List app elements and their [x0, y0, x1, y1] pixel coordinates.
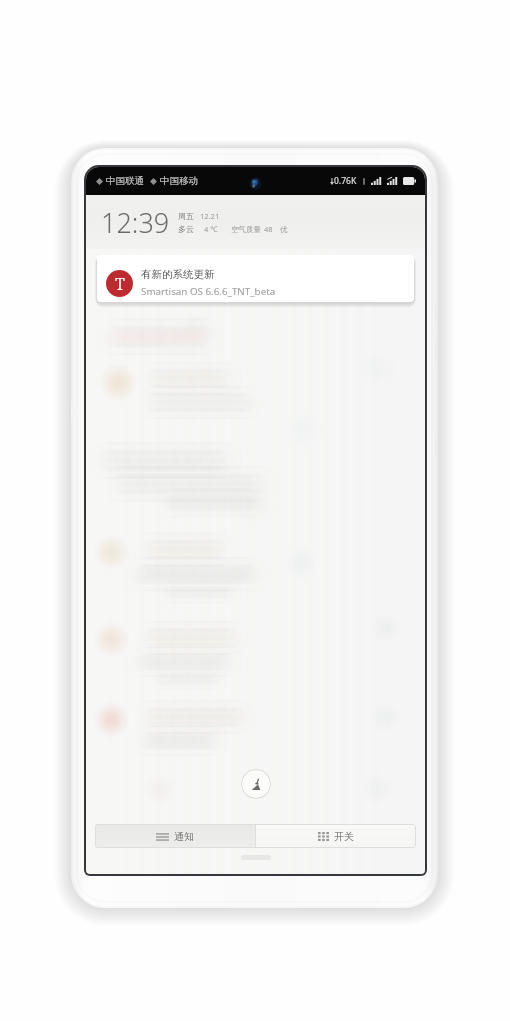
staticText: 12:39	[101, 204, 170, 241]
staticText: 多云	[178, 224, 194, 234]
staticText: T	[115, 273, 125, 295]
staticText: 中国移动	[160, 175, 198, 187]
button[interactable]: T	[97, 255, 414, 302]
staticText: Smartisan OS 6.6.6_TNT_beta	[141, 285, 276, 298]
staticText: 中国联通	[106, 175, 144, 187]
staticText: 开关	[334, 830, 354, 843]
staticText: 通知	[174, 830, 194, 843]
staticText: 4 ℃	[204, 224, 218, 234]
staticText: 周五	[178, 211, 194, 221]
button[interactable]: 开关	[256, 824, 416, 848]
staticText: 优	[280, 225, 288, 234]
button[interactable]: Clear all notifications	[241, 769, 271, 799]
staticText: 0.76K	[334, 175, 357, 187]
staticText: 有新的系统更新	[141, 268, 215, 281]
staticText: 空气质量	[231, 225, 261, 234]
button[interactable]: 通知	[95, 824, 255, 848]
staticText: 12.21	[200, 211, 220, 221]
staticText: 48	[264, 224, 273, 234]
